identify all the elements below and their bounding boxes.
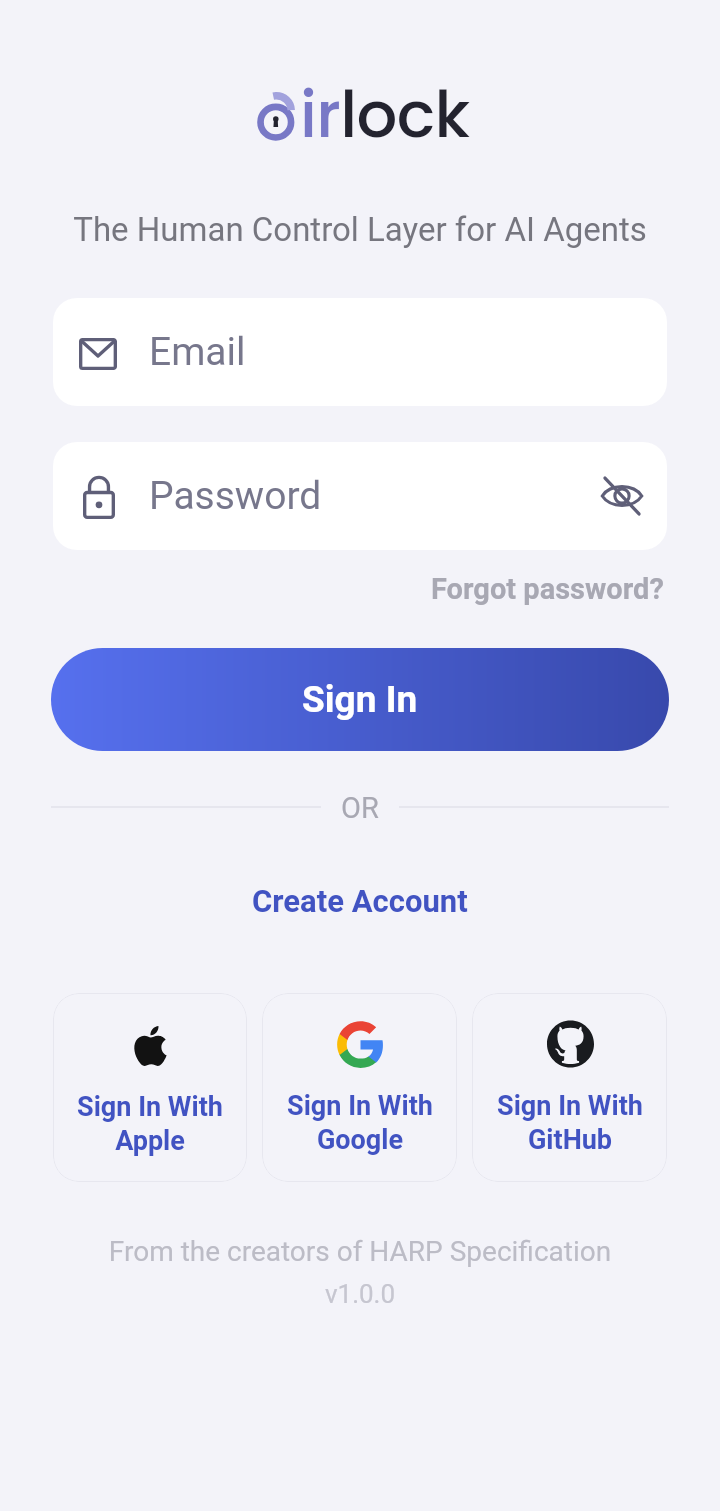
button[interactable]: Show password — [589, 463, 655, 529]
staticText: The Human Control Layer for AI Agents — [0, 210, 720, 249]
staticText: Sign In With Apple — [77, 1091, 223, 1157]
button[interactable]: Sign In — [51, 648, 669, 751]
staticText: Email — [149, 329, 246, 375]
button[interactable]: Forgot password? — [431, 572, 664, 606]
staticText: Sign In With GitHub — [497, 1090, 643, 1156]
staticText: From the creators of HARP Specification — [0, 1235, 720, 1268]
staticText: Sign In With Google — [287, 1090, 433, 1156]
button[interactable]: Sign In With Apple — [53, 993, 247, 1182]
staticText: OR — [341, 791, 379, 823]
button[interactable]: Sign In With Google — [262, 993, 457, 1182]
staticText: Password — [149, 473, 322, 519]
button[interactable]: Create Account — [252, 883, 468, 919]
staticText: v1.0.0 — [0, 1279, 720, 1309]
staticText: Sign In — [302, 678, 418, 721]
button[interactable]: Sign In With GitHub — [472, 993, 667, 1182]
staticText: Create Account — [252, 883, 468, 919]
button[interactable]: Email — [53, 298, 667, 406]
staticText: irlock — [300, 70, 470, 160]
staticText: Forgot password? — [431, 572, 664, 606]
button[interactable]: Password — [53, 442, 667, 550]
